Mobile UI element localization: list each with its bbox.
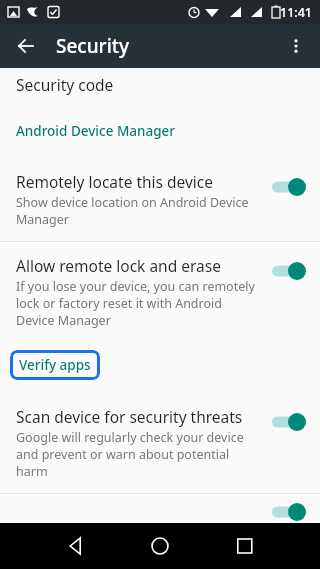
- staticText: Remotely locate this device: [16, 171, 214, 192]
- button[interactable]: Scan device for security threats: [0, 393, 320, 493]
- staticText: Security: [56, 33, 130, 59]
- staticText: Scan device for security threats: [16, 406, 243, 427]
- staticText: Security code: [16, 74, 114, 95]
- staticText: Android Device Manager: [16, 122, 176, 140]
- button[interactable]: Remotely locate this device: [0, 158, 320, 241]
- staticText: 11:41: [280, 4, 313, 21]
- button[interactable]: Toggle: [272, 411, 306, 433]
- staticText: Google will regularly check your device …: [16, 429, 258, 480]
- staticText: Verify apps: [19, 356, 91, 374]
- button[interactable]: Improve harmful app detection: [0, 494, 320, 523]
- button[interactable]: Toggle: [272, 176, 306, 198]
- staticText: Allow remote lock and erase: [16, 255, 221, 276]
- staticText: If you lose your device, you can remotel…: [16, 278, 258, 329]
- button[interactable]: Back: [8, 28, 44, 64]
- button[interactable]: More options: [278, 28, 314, 64]
- button[interactable]: Verify apps: [10, 350, 100, 380]
- button[interactable]: Toggle: [272, 260, 306, 282]
- staticText: Show device location on Android Device M…: [16, 194, 258, 228]
- button[interactable]: Allow remote lock and erase: [0, 242, 320, 342]
